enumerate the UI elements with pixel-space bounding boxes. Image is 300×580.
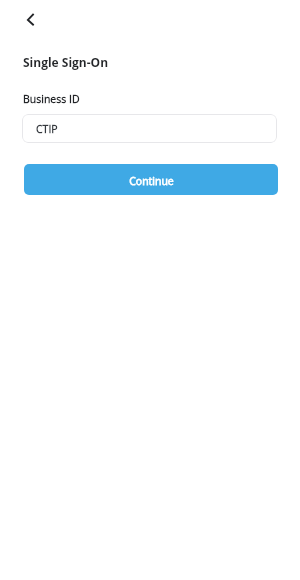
staticText: CTIP (36, 122, 58, 136)
staticText: Continue (129, 174, 174, 188)
staticText: Single Sign-On (23, 54, 109, 70)
button[interactable]: CTIP (22, 114, 277, 143)
button[interactable]: Back (13, 2, 47, 36)
staticText: Business ID (23, 92, 80, 106)
button[interactable]: Continue (24, 164, 278, 195)
